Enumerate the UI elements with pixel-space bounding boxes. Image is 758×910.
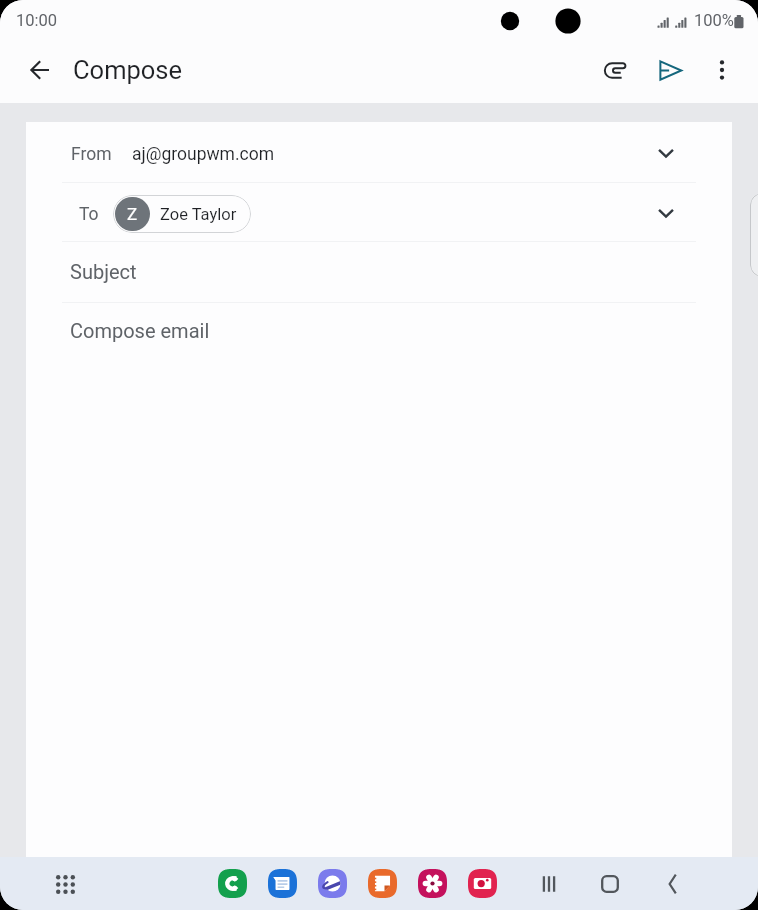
button[interactable]: Phone (218, 869, 247, 898)
button[interactable]: Z (113, 195, 251, 233)
staticText: From (71, 144, 112, 165)
button[interactable]: Internet (318, 869, 347, 898)
button[interactable]: To (26, 183, 732, 241)
staticText: Subject (70, 260, 137, 283)
button[interactable]: Recent apps (518, 857, 579, 910)
button[interactable]: Home (579, 857, 640, 910)
button[interactable]: Gallery (418, 869, 447, 898)
staticText: Compose (73, 55, 183, 85)
button[interactable]: Back (17, 47, 62, 92)
button[interactable]: Subject (26, 242, 732, 302)
button[interactable]: Back (640, 857, 701, 910)
staticText: Compose email (70, 319, 210, 342)
button[interactable]: Send (647, 47, 693, 93)
staticText: Zoe Taylor (160, 205, 237, 224)
staticText: Z (127, 204, 138, 224)
staticText: 10:00 (16, 11, 58, 30)
button[interactable]: More options (699, 47, 745, 93)
button[interactable]: Messages (268, 869, 297, 898)
button[interactable]: Apps (44, 863, 86, 905)
button[interactable]: Expand (646, 193, 686, 233)
staticText: 100% (694, 11, 734, 30)
button[interactable]: Expand (646, 133, 686, 173)
staticText: To (79, 204, 99, 225)
button[interactable]: Camera (468, 869, 497, 898)
staticText: aj@groupwm.com (132, 144, 275, 165)
button[interactable]: Attach file (594, 47, 640, 93)
button[interactable]: Notes (368, 869, 397, 898)
button[interactable]: Compose email (26, 303, 732, 857)
button[interactable]: From (26, 122, 732, 182)
